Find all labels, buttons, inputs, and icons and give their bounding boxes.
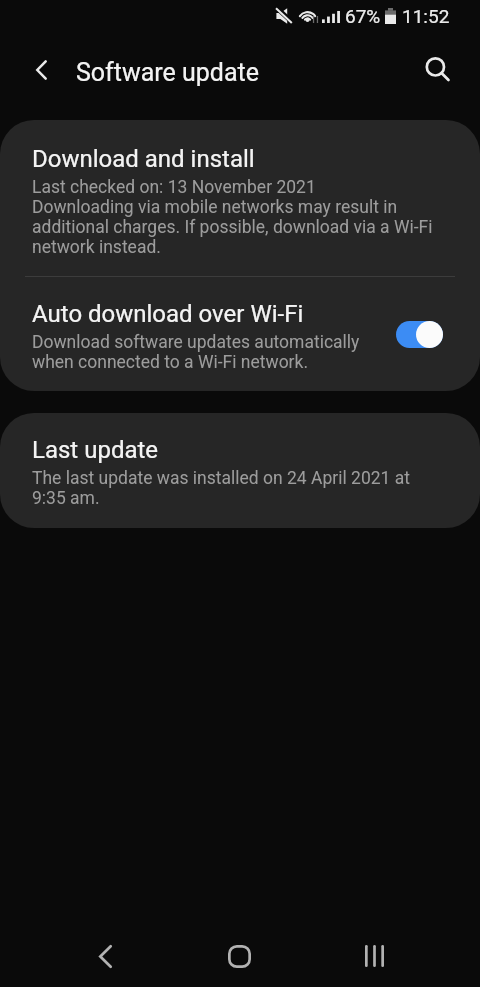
staticText: Auto download over Wi-Fi — [32, 300, 304, 328]
staticText: Download software updates automatically … — [32, 332, 382, 372]
staticText: Last checked on: 13 November 2021 Downlo… — [32, 177, 436, 257]
button[interactable]: Recent apps — [340, 926, 408, 986]
staticText: 11:52 — [402, 5, 450, 27]
staticText: 67% — [345, 5, 381, 27]
button[interactable]: Search — [419, 51, 457, 89]
button[interactable]: Download and install — [0, 120, 480, 276]
button[interactable]: Last update — [0, 413, 480, 528]
staticText: Software update — [76, 58, 260, 87]
button[interactable]: Auto download over Wi-Fi toggle — [396, 320, 443, 348]
button[interactable]: Back — [22, 51, 60, 89]
staticText: The last update was installed on 24 Apri… — [32, 468, 440, 508]
button[interactable]: Home — [205, 926, 273, 986]
staticText: Download and install — [32, 145, 255, 173]
button[interactable]: Auto download over Wi-Fi — [0, 277, 480, 391]
staticText: Last update — [32, 436, 159, 464]
button[interactable]: Back — [71, 926, 139, 986]
